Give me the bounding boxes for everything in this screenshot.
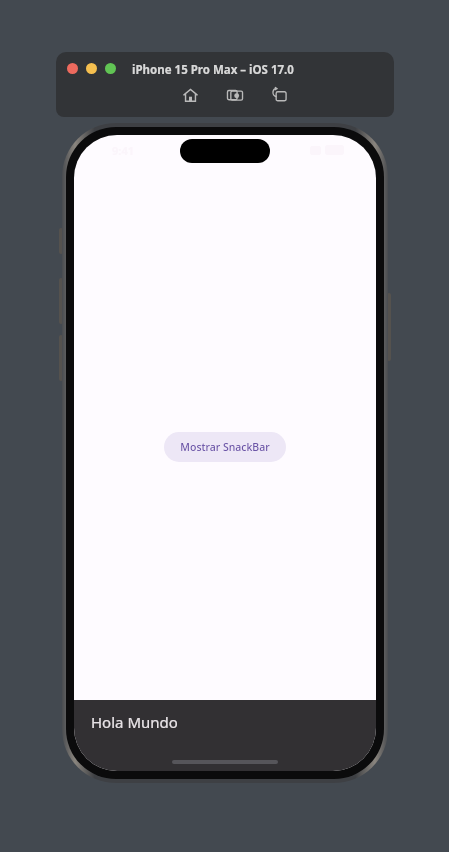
button[interactable]: Close: [67, 63, 78, 74]
button[interactable]: Screenshot: [224, 84, 246, 106]
button[interactable]: Zoom: [105, 63, 116, 74]
button[interactable]: Rotate: [269, 84, 291, 106]
staticText: Hola Mundo: [91, 712, 178, 732]
button[interactable]: Minimize: [86, 63, 97, 74]
staticText: iPhone 15 Pro Max – iOS 17.0: [132, 62, 294, 78]
button[interactable]: Mostrar SnackBar: [164, 432, 286, 462]
button[interactable]: Home: [179, 84, 201, 106]
staticText: Mostrar SnackBar: [180, 440, 270, 454]
